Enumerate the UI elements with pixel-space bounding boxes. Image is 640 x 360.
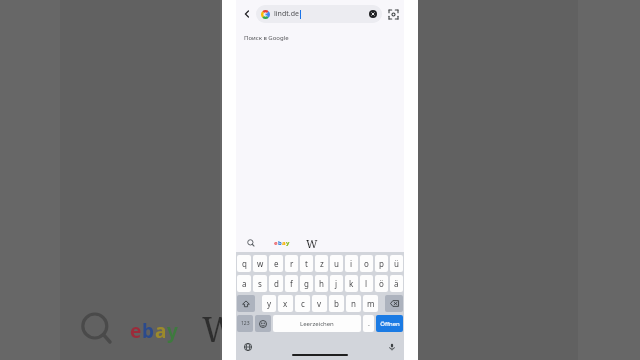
staticText: u [334, 258, 339, 269]
button[interactable]: Leerzeichen [273, 315, 361, 332]
button[interactable]: r [285, 255, 298, 272]
button[interactable]: s [253, 275, 267, 292]
staticText: b [142, 318, 155, 344]
button[interactable]: 123 [237, 315, 253, 332]
button[interactable]: c [295, 295, 310, 312]
button[interactable]: Emoji [255, 315, 271, 332]
staticText: v [317, 298, 322, 309]
button[interactable]: v [312, 295, 327, 312]
staticText: ä [394, 278, 399, 289]
button[interactable]: Google Lens [386, 7, 400, 21]
button[interactable]: f [285, 275, 298, 292]
staticText: i [350, 258, 353, 269]
button[interactable]: o [360, 255, 373, 272]
button[interactable]: Search suggestion [236, 234, 266, 252]
button[interactable]: Back [240, 7, 254, 21]
staticText: b [334, 298, 339, 309]
staticText: h [319, 278, 324, 289]
staticText: ö [379, 278, 384, 289]
staticText: x [283, 298, 288, 309]
staticText: a [242, 278, 247, 289]
button[interactable]: Change keyboard language [241, 340, 255, 354]
staticText: e [130, 318, 142, 344]
staticText: s [258, 278, 262, 289]
button[interactable]: w [253, 255, 267, 272]
button[interactable]: Backspace [385, 295, 403, 312]
staticText: r [290, 258, 294, 269]
button[interactable]: e [269, 255, 283, 272]
button[interactable]: t [300, 255, 313, 272]
staticText: f [290, 278, 293, 289]
staticText: g [304, 278, 309, 289]
staticText: a [155, 318, 167, 344]
staticText: y [267, 298, 272, 309]
button[interactable]: Öffnen [376, 315, 403, 332]
staticText: m [367, 298, 375, 309]
staticText: Поиск в Google [244, 34, 289, 42]
button[interactable]: x [278, 295, 293, 312]
staticText: b [278, 239, 282, 247]
staticText: o [364, 258, 369, 269]
staticText: d [274, 278, 279, 289]
button[interactable]: W [298, 234, 326, 252]
staticText: ü [394, 258, 399, 269]
button[interactable]: z [315, 255, 328, 272]
button[interactable]: d [269, 275, 283, 292]
button[interactable]: j [330, 275, 343, 292]
staticText: y [167, 318, 178, 344]
staticText: l [365, 278, 368, 289]
button[interactable]: e [266, 234, 298, 252]
button[interactable]: a [237, 275, 251, 292]
button[interactable]: y [262, 295, 276, 312]
staticText: k [349, 278, 354, 289]
staticText: q [242, 258, 247, 269]
staticText: p [379, 258, 384, 269]
staticText: W [306, 236, 318, 251]
button[interactable]: b [329, 295, 344, 312]
button[interactable]: ö [375, 275, 388, 292]
staticText: y [286, 239, 290, 247]
staticText: lindt.de [274, 9, 299, 19]
staticText: Leerzeichen [300, 320, 334, 328]
button[interactable]: i [345, 255, 358, 272]
staticText: Öffnen [380, 320, 400, 328]
button[interactable]: . [363, 315, 374, 332]
button[interactable]: g [300, 275, 313, 292]
staticText: j [335, 278, 338, 289]
button[interactable]: Clear [369, 10, 377, 18]
staticText: 123 [241, 320, 250, 327]
button[interactable]: n [346, 295, 361, 312]
button[interactable]: u [330, 255, 343, 272]
button[interactable]: ü [390, 255, 403, 272]
button[interactable]: Voice input [385, 340, 399, 354]
button[interactable]: l [360, 275, 373, 292]
staticText: W [202, 306, 238, 352]
staticText: e [274, 239, 278, 247]
button[interactable]: Shift [237, 295, 255, 312]
button[interactable]: m [363, 295, 378, 312]
staticText: n [351, 298, 356, 309]
button[interactable]: k [345, 275, 358, 292]
staticText: w [257, 258, 264, 269]
button[interactable]: q [237, 255, 251, 272]
staticText: c [301, 298, 305, 309]
staticText: a [282, 239, 286, 247]
button[interactable]: p [375, 255, 388, 272]
staticText: t [305, 258, 308, 269]
button[interactable]: ä [390, 275, 403, 292]
button[interactable]: lindt.de [256, 5, 382, 23]
staticText: z [320, 258, 324, 269]
staticText: e [274, 258, 279, 269]
button[interactable]: h [315, 275, 328, 292]
staticText: . [368, 319, 370, 329]
